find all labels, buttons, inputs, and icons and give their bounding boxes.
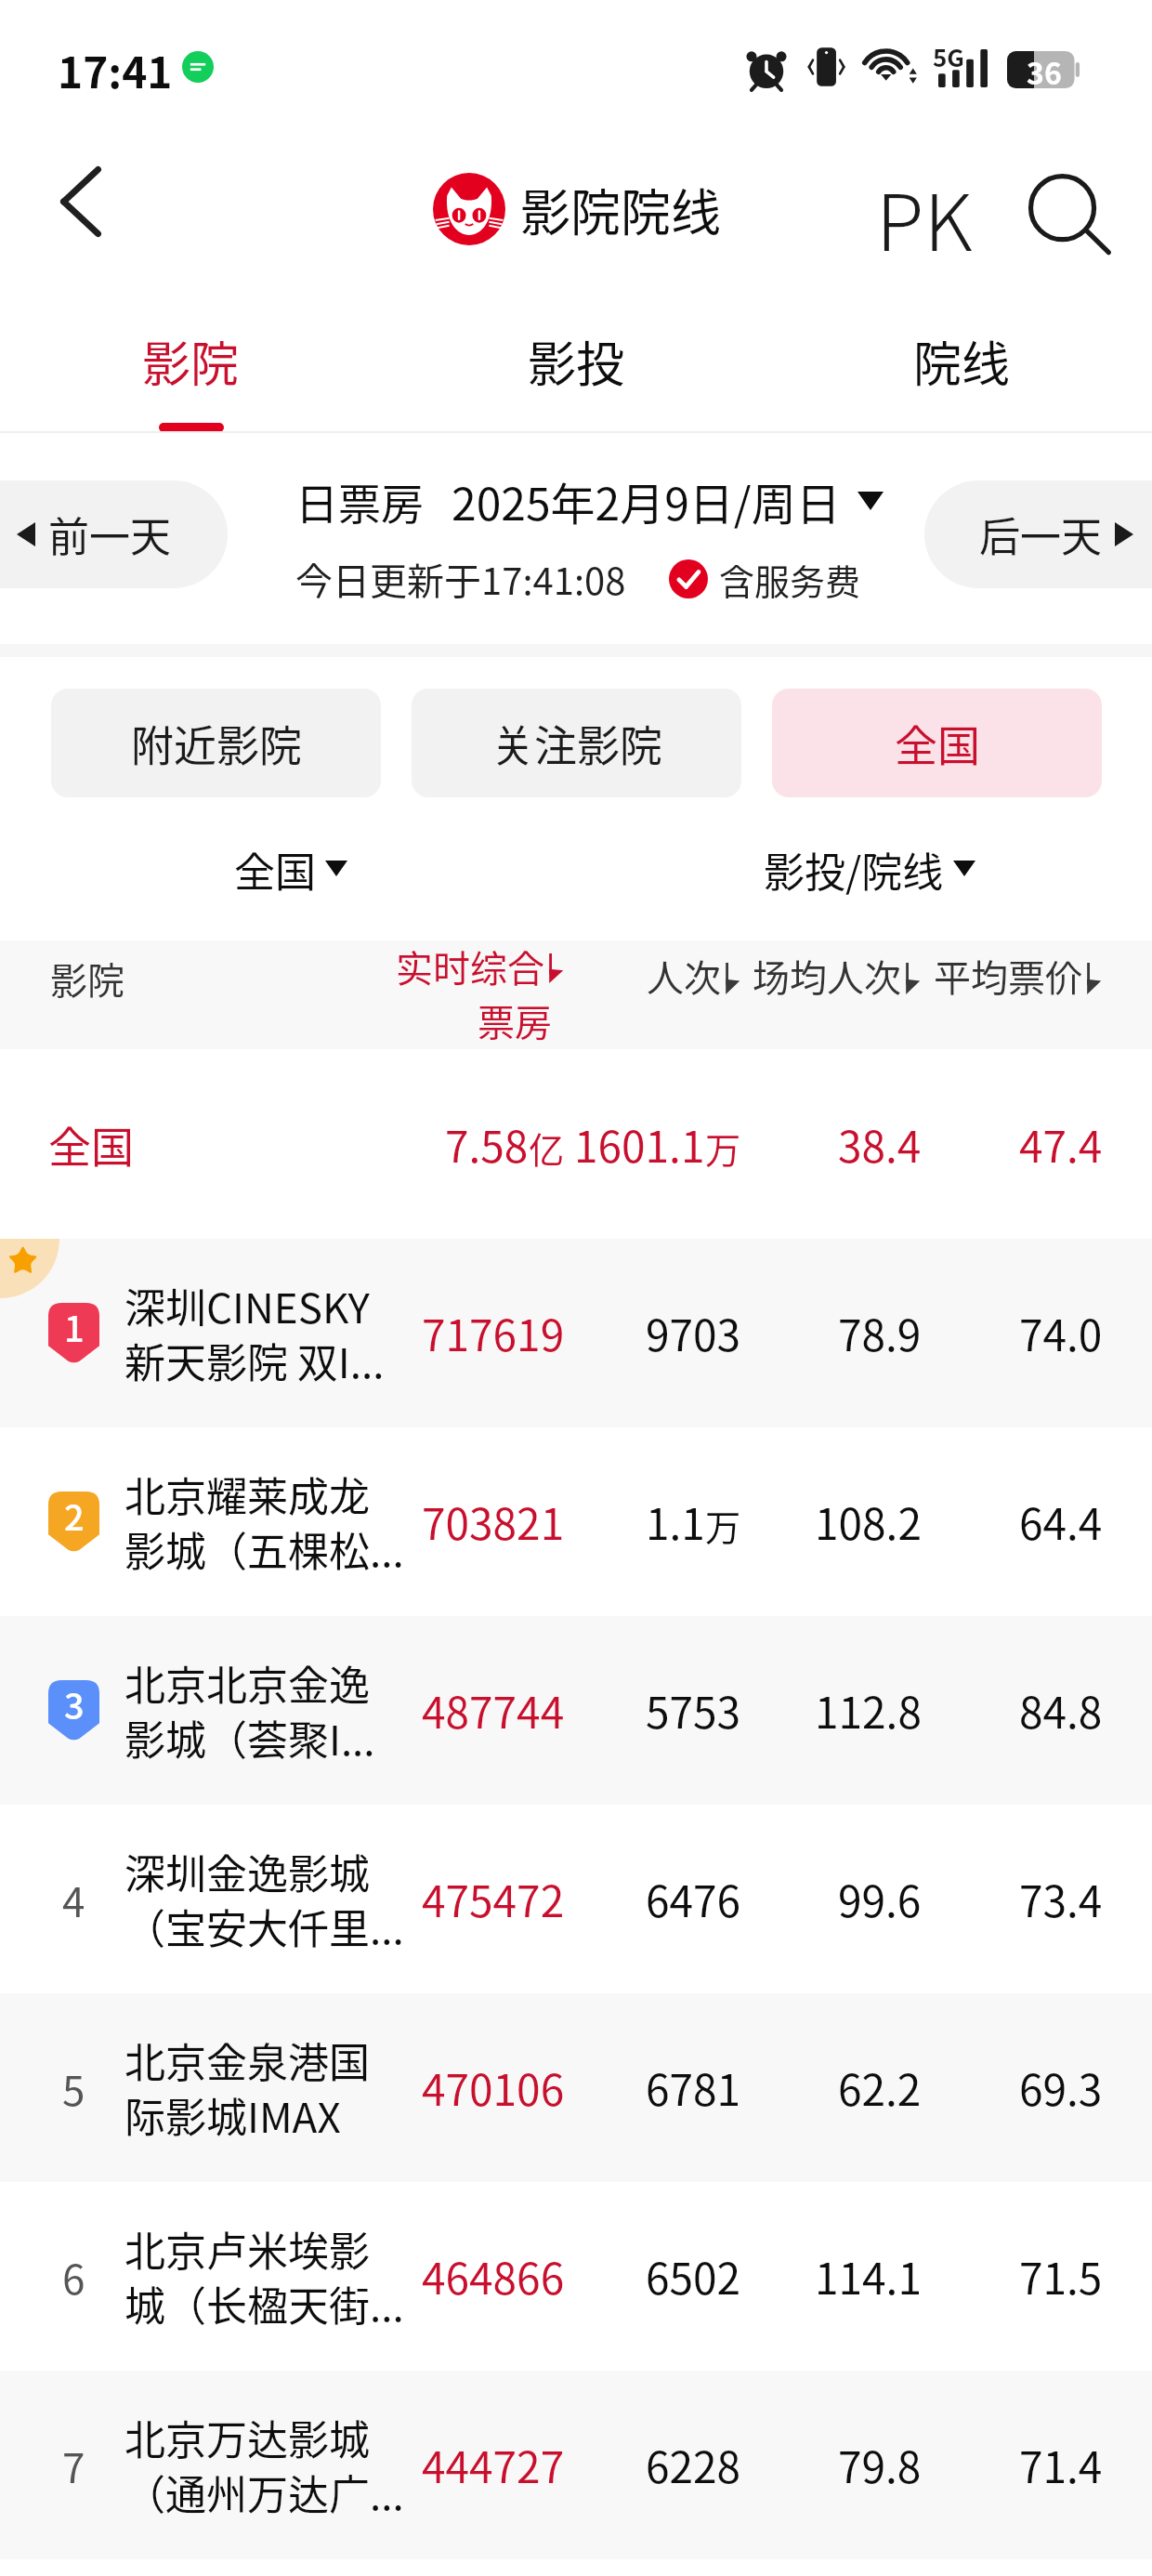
staticText: 1601.1	[574, 1113, 705, 1176]
staticText: 6	[62, 2247, 85, 2307]
staticText: 北京耀莱成龙 影城（五棵松...	[124, 1465, 404, 1579]
staticText: 深圳金逸影城 （宝安大仟里...	[124, 1842, 404, 1956]
staticText: 关注影院	[491, 712, 662, 774]
button[interactable]: 院线	[813, 296, 1110, 427]
button[interactable]: 3	[0, 1616, 1152, 1805]
button[interactable]: 1	[0, 1239, 1152, 1427]
staticText: 5	[62, 2058, 85, 2118]
staticText: 475472	[422, 1868, 565, 1930]
button[interactable]: 7	[0, 2371, 1152, 2559]
button[interactable]: Search	[1018, 158, 1122, 277]
staticText: 108.2	[815, 1491, 922, 1553]
staticText: 2	[64, 1490, 85, 1541]
staticText: PK	[876, 161, 973, 274]
staticText: 后一天	[979, 505, 1102, 564]
button[interactable]: 4	[0, 1805, 1152, 1993]
staticText: 36	[1027, 50, 1062, 87]
staticText: 84.8	[1019, 1679, 1103, 1741]
staticText: 今日更新于17:41:08	[295, 552, 626, 606]
staticText: 实时综合	[396, 940, 544, 993]
staticText: 703821	[422, 1491, 565, 1553]
staticText: 含服务费	[719, 554, 861, 605]
staticText: 470106	[422, 2057, 565, 2119]
staticText: 平均票价	[934, 949, 1082, 1003]
staticText: 62.2	[838, 2057, 922, 2119]
staticText: 票房	[478, 993, 552, 1047]
staticText: 6228	[646, 2434, 741, 2496]
button[interactable]: 6	[0, 2182, 1152, 2371]
staticText: 北京金泉港国 际影城IMAX	[124, 2031, 370, 2145]
staticText: 3	[64, 1678, 85, 1729]
button[interactable]: 2	[0, 1427, 1152, 1616]
staticText: 影院院线	[520, 173, 721, 245]
staticText: 112.8	[815, 1679, 922, 1741]
button[interactable]: 全国	[234, 840, 347, 896]
button[interactable]: 全国	[772, 689, 1102, 797]
button[interactable]: 关注影院	[412, 689, 741, 797]
button[interactable]: PK	[869, 160, 980, 275]
staticText: 114.1	[815, 2245, 922, 2307]
staticText: 7	[62, 2436, 85, 2495]
staticText: 万	[705, 1123, 741, 1174]
staticText: 1	[64, 1301, 85, 1352]
staticText: 6781	[646, 2057, 741, 2119]
button[interactable]: 后一天	[924, 480, 1152, 588]
staticText: 影院	[142, 326, 240, 396]
staticText: 万	[705, 1500, 741, 1551]
button[interactable]: 影院	[42, 296, 339, 427]
button[interactable]: 附近影院	[51, 689, 381, 797]
staticText: 前一天	[48, 505, 171, 564]
button[interactable]: Back	[30, 151, 132, 253]
staticText: 日票房	[295, 470, 424, 532]
staticText: 73.4	[1019, 1868, 1103, 1930]
button[interactable]: 日票房	[295, 468, 884, 533]
staticText: 北京卢米埃影 城（长楹天街...	[124, 2219, 404, 2333]
staticText: 亿	[529, 1123, 565, 1174]
staticText: 全国	[48, 1113, 134, 1176]
staticText: 444727	[422, 2434, 565, 2496]
button[interactable]: 影投/院线	[764, 840, 975, 896]
staticText: 场均人次	[753, 949, 901, 1003]
staticText: 78.9	[838, 1302, 922, 1364]
button[interactable]: 实时综合	[333, 940, 565, 1047]
staticText: 69.3	[1019, 2057, 1103, 2119]
staticText: 464866	[422, 2245, 565, 2307]
staticText: 74.0	[1019, 1302, 1103, 1364]
staticText: 北京北京金逸 影城（荟聚I...	[124, 1653, 375, 1768]
staticText: 7.58	[445, 1113, 529, 1176]
staticText: 71.4	[1019, 2434, 1103, 2496]
button[interactable]: 平均票价	[871, 949, 1103, 1003]
staticText: 487744	[422, 1679, 565, 1741]
staticText: 2025年2月9日/周日	[452, 468, 841, 533]
staticText: 5753	[646, 1679, 741, 1741]
staticText: 5G	[933, 39, 964, 74]
staticText: 6502	[646, 2245, 741, 2307]
staticText: 影投/院线	[764, 840, 944, 896]
staticText: 47.4	[1019, 1113, 1103, 1176]
staticText: 1.1	[646, 1491, 705, 1553]
staticText: 79.8	[838, 2434, 922, 2496]
staticText: 99.6	[838, 1868, 922, 1930]
staticText: 17:41	[58, 39, 173, 101]
staticText: 全国	[895, 712, 980, 774]
button[interactable]: 前一天	[0, 480, 228, 588]
staticText: 影院	[50, 952, 124, 1005]
button[interactable]: 5	[0, 1993, 1152, 2182]
button[interactable]: 场均人次	[689, 949, 922, 1003]
button[interactable]: 影投	[427, 296, 725, 427]
staticText: 影投	[528, 326, 625, 396]
staticText: 院线	[913, 326, 1011, 396]
staticText: 深圳CINESKY 新天影院 双I...	[124, 1276, 385, 1390]
staticText: 4	[62, 1870, 85, 1929]
staticText: 6476	[646, 1868, 741, 1930]
staticText: 全国	[234, 840, 316, 896]
staticText: 附近影院	[131, 712, 302, 774]
button[interactable]: 人次	[509, 949, 741, 1003]
staticText: 717619	[422, 1302, 565, 1364]
staticText: 人次	[647, 949, 721, 1003]
staticText: 64.4	[1019, 1491, 1103, 1553]
staticText: 北京万达影城 （通州万达广...	[124, 2408, 404, 2522]
staticText: 38.4	[838, 1113, 922, 1176]
staticText: 71.5	[1019, 2245, 1103, 2307]
staticText: 9703	[646, 1302, 741, 1364]
